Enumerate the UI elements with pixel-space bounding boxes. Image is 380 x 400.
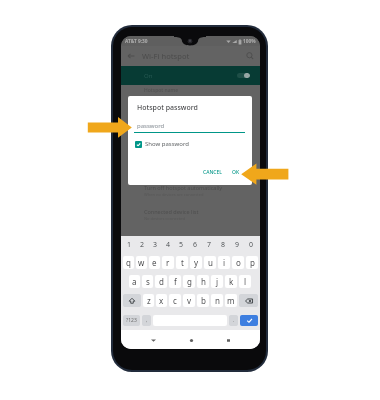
staticText: n	[215, 295, 220, 306]
staticText: Hotspot name	[144, 87, 179, 94]
button[interactable]: 4	[162, 236, 175, 253]
button[interactable]: Home	[186, 335, 196, 345]
button[interactable]: e	[149, 256, 160, 269]
button[interactable]: 2	[136, 236, 149, 253]
button[interactable]: k	[225, 275, 237, 288]
button[interactable]: t	[176, 256, 188, 269]
button[interactable]: 1	[123, 236, 136, 253]
button[interactable]: b	[197, 294, 209, 307]
button[interactable]: y	[190, 256, 202, 269]
staticText: k	[229, 276, 234, 287]
button[interactable]: s	[142, 275, 153, 288]
button[interactable]: Back	[126, 51, 136, 61]
staticText: x	[159, 295, 164, 306]
staticText: v	[187, 295, 192, 306]
button[interactable]: Recents	[223, 335, 233, 345]
button[interactable]: x	[156, 294, 167, 307]
staticText: g	[187, 276, 192, 287]
staticText: 9	[235, 240, 240, 250]
staticText: Show password	[145, 140, 189, 148]
staticText: e	[152, 257, 157, 268]
staticText: password	[137, 122, 165, 130]
staticText: j	[216, 276, 219, 287]
button[interactable]: w	[136, 256, 147, 269]
staticText: l	[244, 276, 247, 287]
button[interactable]: c	[169, 294, 181, 307]
button[interactable]: Back	[148, 335, 158, 345]
button[interactable]: i	[218, 256, 230, 269]
button[interactable]: u	[204, 256, 216, 269]
staticText: y	[194, 257, 199, 268]
staticText: r	[166, 257, 170, 268]
button[interactable]: r	[162, 256, 174, 269]
staticText: m	[227, 295, 235, 306]
button[interactable]: Comma	[142, 315, 151, 326]
button[interactable]: q	[123, 256, 134, 269]
button[interactable]: Show password	[135, 140, 189, 148]
button[interactable]: d	[155, 275, 167, 288]
button[interactable]: Enter	[240, 315, 258, 326]
button[interactable]: z	[143, 294, 154, 307]
staticText: On	[144, 72, 153, 80]
button[interactable]: 9	[230, 236, 244, 253]
staticText: 2	[140, 240, 145, 250]
staticText: 5	[179, 240, 184, 250]
staticText: 1	[127, 240, 132, 250]
button[interactable]: v	[183, 294, 195, 307]
staticText: b	[201, 295, 206, 306]
staticText: 8	[221, 240, 226, 250]
button[interactable]: 3	[149, 236, 162, 253]
button[interactable]: 5	[175, 236, 188, 253]
staticText: s	[146, 276, 150, 287]
staticText: Connected device list	[144, 208, 199, 215]
button[interactable]: 6	[188, 236, 202, 253]
button[interactable]: 8	[216, 236, 230, 253]
staticText: Hotspot password	[137, 103, 198, 113]
button[interactable]: n	[211, 294, 223, 307]
button[interactable]: Search	[245, 51, 255, 61]
staticText: z	[147, 295, 151, 306]
staticText: c	[173, 295, 177, 306]
staticText: 0	[249, 240, 254, 250]
button[interactable]: p	[246, 256, 258, 269]
staticText: ?123	[126, 317, 137, 324]
button[interactable]: Shift	[123, 294, 141, 307]
button[interactable]: ?123	[123, 315, 140, 326]
button[interactable]: j	[211, 275, 223, 288]
staticText: .	[233, 317, 235, 324]
button[interactable]: Period	[229, 315, 238, 326]
staticText: 7	[207, 240, 212, 250]
button[interactable]: Backspace	[239, 294, 258, 307]
staticText: o	[236, 257, 241, 268]
staticText: u	[208, 257, 213, 268]
staticText: OK	[232, 169, 240, 176]
button[interactable]: Hotspot toggle	[237, 73, 250, 78]
staticText: AT&T 9:30	[125, 38, 148, 45]
staticText: 6	[193, 240, 198, 250]
staticText: 4	[166, 240, 171, 250]
staticText: p	[250, 257, 255, 268]
staticText: ,	[146, 317, 148, 324]
button[interactable]: a	[129, 275, 140, 288]
staticText: Turn off hotspot automatically	[144, 184, 223, 191]
staticText: i	[223, 257, 226, 268]
staticText: h	[201, 276, 206, 287]
staticText: q	[126, 257, 131, 268]
button[interactable]: f	[169, 275, 181, 288]
button[interactable]: m	[225, 294, 237, 307]
button[interactable]: h	[197, 275, 209, 288]
button[interactable]: OK	[229, 167, 243, 178]
button[interactable]: l	[239, 275, 251, 288]
button[interactable]: CANCEL	[200, 167, 225, 178]
button[interactable]: 7	[202, 236, 216, 253]
button[interactable]: o	[232, 256, 244, 269]
staticText: 100%	[243, 38, 256, 45]
button[interactable]: g	[183, 275, 195, 288]
button[interactable]: 0	[244, 236, 258, 253]
staticText: w	[138, 257, 145, 268]
staticText: 3	[153, 240, 158, 250]
staticText: a	[132, 276, 137, 287]
